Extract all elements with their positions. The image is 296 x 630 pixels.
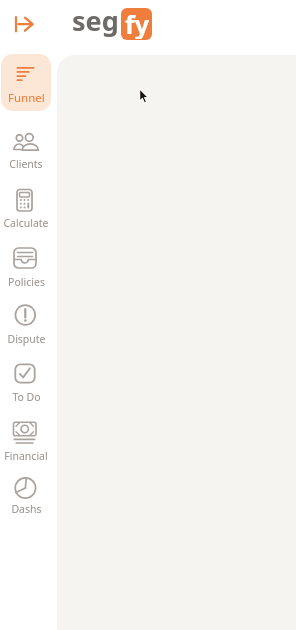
staticText: Calculate [3,216,49,230]
button[interactable]: Calculate [0,179,52,236]
button[interactable]: Dispute [0,293,52,350]
button[interactable]: Policies [0,236,52,293]
button[interactable]: Funnel [1,54,51,111]
staticText: fy [125,8,149,39]
staticText: seg [72,2,119,39]
staticText: Dispute [7,332,46,346]
staticText: Policies [8,275,45,289]
button[interactable]: To Do [0,350,52,407]
button[interactable]: Clients [0,122,52,179]
staticText: Financial [4,449,48,463]
button[interactable]: Financial [0,407,52,464]
staticText: To Do [12,390,41,404]
button[interactable]: Dashs [0,464,52,521]
button[interactable] [9,10,41,40]
staticText: Funnel [8,90,45,106]
staticText: Clients [9,157,43,171]
staticText: Dashs [11,502,42,516]
